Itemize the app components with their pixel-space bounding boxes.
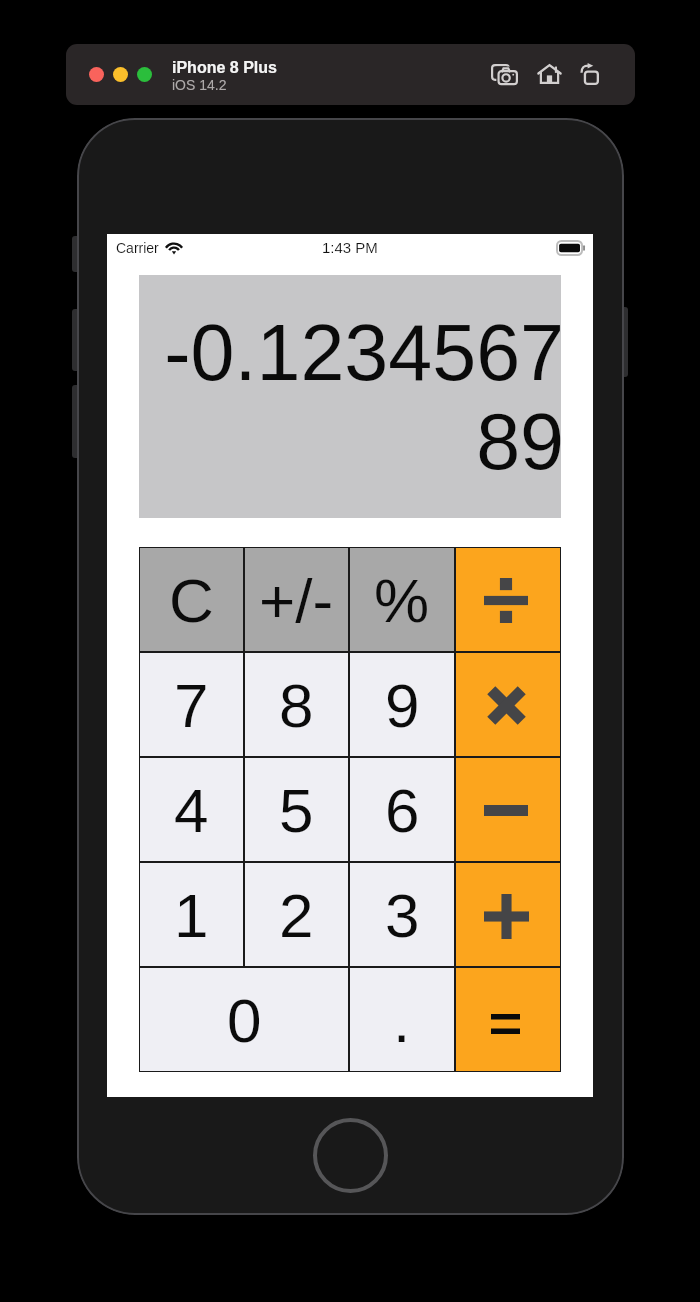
button[interactable]: Power [620, 307, 628, 377]
staticText: % [374, 566, 430, 635]
button[interactable]: 1 [140, 863, 243, 966]
button[interactable]: +/- [245, 548, 348, 651]
button[interactable]: Silent switch [72, 236, 80, 272]
button[interactable]: 3 [350, 863, 454, 966]
staticText: 8 [279, 671, 314, 740]
button[interactable]: 4 [140, 758, 243, 861]
staticText: 4 [174, 776, 209, 845]
button[interactable]: % [350, 548, 454, 651]
button[interactable]: Home [534, 58, 564, 88]
staticText: C [169, 566, 214, 635]
staticText: +/- [259, 566, 334, 635]
staticText: iOS 14.2 [172, 77, 227, 93]
button[interactable]: 5 [245, 758, 348, 861]
button[interactable]: Volume up [72, 309, 80, 371]
button[interactable]: Plus [456, 863, 560, 966]
staticText: Carrier [116, 240, 159, 256]
button[interactable]: Minimize [113, 67, 128, 82]
button[interactable]: Equals [456, 968, 560, 1071]
staticText: 1:43 PM [322, 239, 378, 256]
staticText: 6 [385, 776, 420, 845]
staticText: 2 [279, 881, 314, 950]
staticText: 0 [227, 986, 262, 1055]
staticText: 7 [174, 671, 209, 740]
staticText: 3 [385, 881, 420, 950]
button[interactable]: Home button [313, 1118, 388, 1193]
button[interactable]: Volume down [72, 385, 80, 458]
button[interactable]: 8 [245, 653, 348, 756]
button[interactable]: 6 [350, 758, 454, 861]
staticText: -0.123456789 [142, 308, 564, 486]
staticText: . [393, 986, 411, 1055]
button[interactable]: Divide [456, 548, 560, 651]
staticText: 5 [279, 776, 314, 845]
button[interactable]: 9 [350, 653, 454, 756]
button[interactable]: 7 [140, 653, 243, 756]
button[interactable]: Maximize [137, 67, 152, 82]
button[interactable]: 2 [245, 863, 348, 966]
button[interactable]: C [140, 548, 243, 651]
button[interactable]: Minus [456, 758, 560, 861]
staticText: 1 [174, 881, 209, 950]
button[interactable]: . [350, 968, 454, 1071]
button[interactable]: Close [89, 67, 104, 82]
button[interactable]: 0 [140, 968, 348, 1071]
staticText: 9 [385, 671, 420, 740]
button[interactable]: Multiply [456, 653, 560, 756]
button[interactable]: Screenshot [489, 59, 519, 89]
button[interactable]: Rotate [575, 60, 603, 88]
staticText: iPhone 8 Plus [172, 59, 277, 77]
